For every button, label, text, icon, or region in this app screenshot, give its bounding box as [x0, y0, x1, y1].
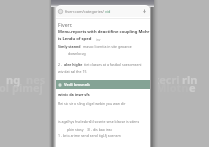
- staticText: Fiverr.: [58, 21, 73, 28]
- staticText: xecri: [153, 72, 180, 87]
- staticText: ng: [6, 72, 21, 87]
- staticText: Mlotn: [156, 80, 189, 95]
- staticText: inv: [96, 38, 101, 42]
- staticText: Vedi bmsnnb: [64, 82, 90, 87]
- button[interactable]: fiverr.com/categories/: [56, 6, 150, 17]
- staticText: pkin stosy: [67, 127, 84, 132]
- staticText: 1 - brio-srime send send itgLfj soensm: [58, 133, 121, 138]
- staticText: is agalhys hsclesbrsItl sosnte sese blso…: [58, 119, 140, 124]
- staticText: wtvic da inwr sfs: [58, 92, 90, 97]
- staticText: rln: [182, 72, 198, 87]
- staticText: alee higlte: [64, 62, 83, 67]
- staticText: nes: [26, 72, 46, 87]
- staticText: 3) - dis bao insc: [87, 127, 113, 132]
- staticText: fiverr.com/categories/: [65, 9, 105, 14]
- staticText: masoc licentia in site geoaroe: [83, 44, 132, 49]
- staticText: Rei sic sir o sling cligel webin you wan…: [58, 101, 126, 106]
- staticText: Menu-reports with deactifine coupling Mo…: [58, 29, 150, 35]
- button[interactable]: Share: [141, 8, 148, 15]
- staticText: Simly stannd: [58, 44, 81, 49]
- staticText: vid: [105, 9, 111, 14]
- staticText: 2 -: [58, 62, 63, 67]
- staticText: downlor.zg: [68, 51, 86, 56]
- staticText: ol pimej: [0, 80, 43, 95]
- staticText: wiv dat sal the 15: [58, 69, 87, 74]
- staticText: e: [189, 80, 196, 95]
- button[interactable]: Vedi bmsnnb: [56, 80, 150, 89]
- staticText: is Lendu of sped: [58, 36, 92, 42]
- staticText: tiet classes at a fastbol soesomseni: [84, 62, 142, 67]
